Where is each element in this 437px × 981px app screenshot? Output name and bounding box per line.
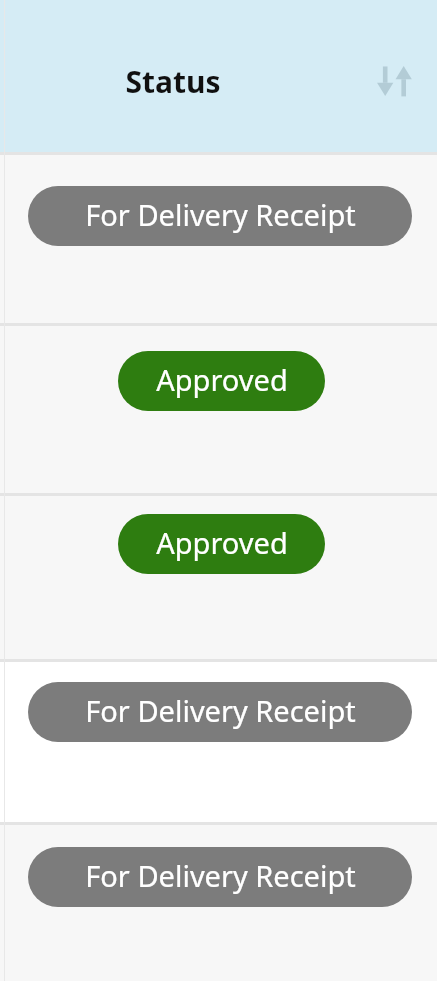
staticText: For Delivery Receipt (85, 691, 356, 730)
staticText: Status (125, 61, 221, 102)
button[interactable]: For Delivery Receipt (0, 662, 437, 822)
staticText: For Delivery Receipt (85, 856, 356, 895)
staticText: Approved (156, 523, 288, 562)
button[interactable]: Approved (0, 326, 437, 493)
button[interactable]: Sort (372, 59, 416, 103)
button[interactable]: Approved (0, 496, 437, 659)
button[interactable]: For Delivery Receipt (0, 155, 437, 323)
staticText: For Delivery Receipt (85, 195, 356, 234)
button[interactable]: Approved (118, 351, 325, 411)
button[interactable]: For Delivery Receipt (0, 825, 437, 981)
button[interactable]: Status (0, 0, 437, 152)
button[interactable]: For Delivery Receipt (28, 847, 412, 907)
button[interactable]: For Delivery Receipt (28, 186, 412, 246)
staticText: Approved (156, 360, 288, 399)
button[interactable]: Approved (118, 514, 325, 574)
button[interactable]: For Delivery Receipt (28, 682, 412, 742)
